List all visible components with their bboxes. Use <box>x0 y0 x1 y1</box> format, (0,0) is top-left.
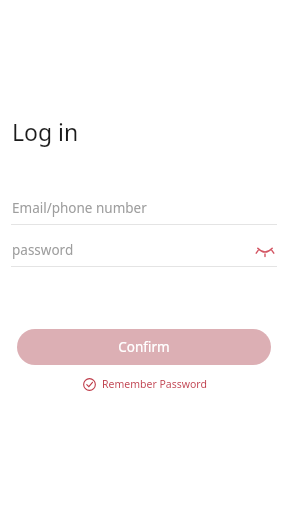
button[interactable]: Show password <box>254 239 276 261</box>
staticText: Remember Password <box>102 377 207 391</box>
button[interactable]: Confirm <box>17 329 271 365</box>
staticText: Log in <box>12 116 79 147</box>
button[interactable]: Remember Password <box>80 375 209 393</box>
button[interactable]: password <box>0 238 288 267</box>
staticText: Email/phone number <box>12 199 147 217</box>
staticText: Confirm <box>118 338 170 356</box>
button[interactable]: Email/phone number <box>0 196 288 225</box>
staticText: password <box>12 241 74 259</box>
